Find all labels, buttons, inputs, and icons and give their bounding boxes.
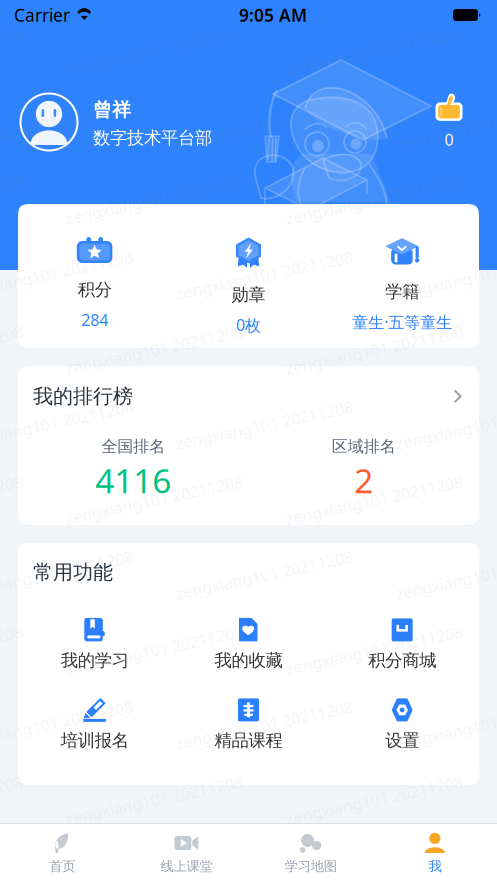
button[interactable]: 精品课程 [172, 697, 325, 753]
staticText: zengxiang101 20211208 [393, 714, 497, 736]
button[interactable]: 学籍 [325, 204, 479, 348]
staticText: 数字技术平台部 [93, 127, 212, 149]
staticText: zengxiang101 20211208 [393, 264, 497, 286]
staticText: zengxiang101 20211208 [0, 489, 24, 511]
staticText: 284 [81, 309, 108, 330]
staticText: 4116 [95, 458, 171, 502]
button[interactable]: 学习地图 [248, 823, 373, 883]
staticText: 曾祥 [93, 98, 131, 121]
staticText: zengxiang101 20211208 [63, 639, 244, 661]
staticText: zengxiang101 20211208 [0, 864, 134, 883]
staticText: zengxiang101 20211208 [173, 264, 354, 286]
staticText: 线上课堂 [160, 858, 212, 874]
button[interactable]: 我的收藏 [172, 617, 325, 673]
staticText: 0枚 [236, 314, 261, 335]
staticText: zengxiang101 20211208 [173, 714, 354, 736]
staticText: 童生·五等童生 [352, 311, 452, 332]
staticText: 我的排行榜 [33, 384, 133, 409]
button[interactable]: 积分商城 [325, 617, 479, 673]
staticText: zengxiang101 20211208 [63, 339, 244, 361]
staticText: 勋章 [231, 284, 265, 305]
staticText: Carrier [14, 3, 70, 26]
staticText: 我的学习 [61, 650, 129, 671]
staticText: 9:05 AM [239, 3, 307, 26]
staticText: 学籍 [385, 281, 419, 302]
staticText: 积分 [78, 279, 112, 300]
staticText: zengxiang101 20211208 [0, 714, 134, 736]
staticText: zengxiang101 20211208 [63, 489, 244, 511]
staticText: zengxiang101 20211208 [393, 414, 497, 436]
staticText: zengxiang101 20211208 [0, 189, 24, 211]
staticText: 设置 [385, 730, 419, 751]
button[interactable]: 点赞 [422, 94, 476, 150]
staticText: 学习地图 [285, 858, 337, 874]
button[interactable]: 我的排行榜 [18, 366, 479, 525]
button[interactable]: 设置 [325, 697, 479, 753]
button[interactable]: 积分 [18, 204, 172, 348]
button[interactable]: 线上课堂 [124, 823, 248, 883]
staticText: 我的收藏 [214, 650, 282, 671]
staticText: zengxiang101 20211208 [283, 639, 464, 661]
staticText: 0 [444, 129, 453, 150]
staticText: zengxiang101 20211208 [393, 864, 497, 883]
staticText: zengxiang101 20211208 [63, 189, 244, 211]
button[interactable]: 勋章 [172, 204, 325, 348]
staticText: 积分商城 [368, 650, 436, 671]
staticText: zengxiang101 20211208 [393, 564, 497, 586]
staticText: zengxiang101 20211208 [0, 414, 134, 436]
staticText: zengxiang101 20211208 [0, 564, 134, 586]
staticText: zengxiang101 20211208 [0, 264, 134, 286]
staticText: zengxiang101 20211208 [283, 189, 464, 211]
staticText: zengxiang101 20211208 [173, 864, 354, 883]
staticText: zengxiang101 20211208 [393, 114, 497, 136]
staticText: 培训报名 [61, 730, 129, 751]
staticText: zengxiang101 20211208 [0, 339, 24, 361]
button[interactable]: 我的学习 [18, 617, 172, 673]
staticText: 我 [428, 858, 441, 874]
staticText: 精品课程 [214, 730, 282, 751]
staticText: 首页 [49, 858, 75, 874]
staticText: zengxiang101 20211208 [0, 114, 134, 136]
staticText: 常用功能 [33, 560, 113, 585]
staticText: zengxiang101 20211208 [283, 339, 464, 361]
button[interactable]: 首页 [0, 823, 124, 883]
staticText: zengxiang101 20211208 [283, 489, 464, 511]
button[interactable]: 培训报名 [18, 697, 172, 753]
staticText: zengxiang101 20211208 [173, 114, 354, 136]
staticText: 区域排名 [332, 437, 396, 456]
button[interactable]: 我 [373, 823, 497, 883]
staticText: zengxiang101 20211208 [0, 639, 24, 661]
staticText: 2 [354, 458, 373, 502]
staticText: 全国排名 [101, 437, 165, 456]
